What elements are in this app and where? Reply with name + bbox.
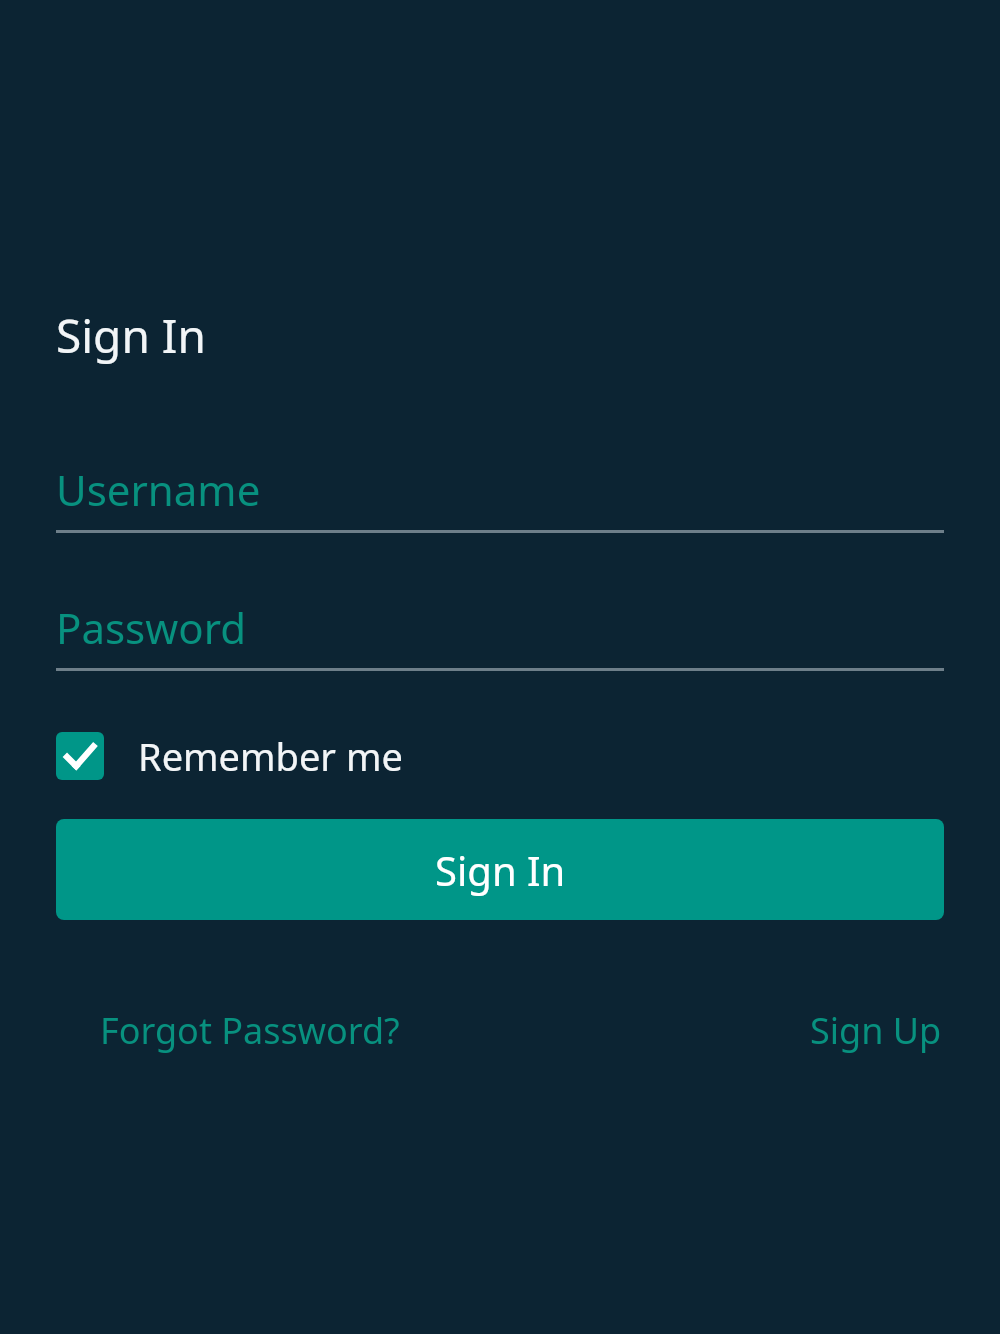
staticText: Sign Up	[810, 1006, 942, 1055]
button[interactable]: Sign Up	[808, 996, 944, 1065]
button[interactable]: Password	[56, 599, 944, 671]
staticText: Password	[56, 599, 246, 656]
button[interactable]: Sign In	[56, 819, 944, 920]
staticText: Remember me	[138, 730, 403, 782]
button[interactable]: Forgot Password?	[56, 996, 444, 1065]
button[interactable]: Remember me checkbox, checked	[56, 728, 403, 784]
button[interactable]: Username	[56, 461, 944, 533]
staticText: Sign In	[56, 304, 206, 367]
other: Remember me checkbox, checked	[56, 732, 104, 780]
staticText: Forgot Password?	[100, 1006, 400, 1055]
staticText: Username	[56, 461, 261, 518]
staticText: Sign In	[435, 843, 566, 897]
